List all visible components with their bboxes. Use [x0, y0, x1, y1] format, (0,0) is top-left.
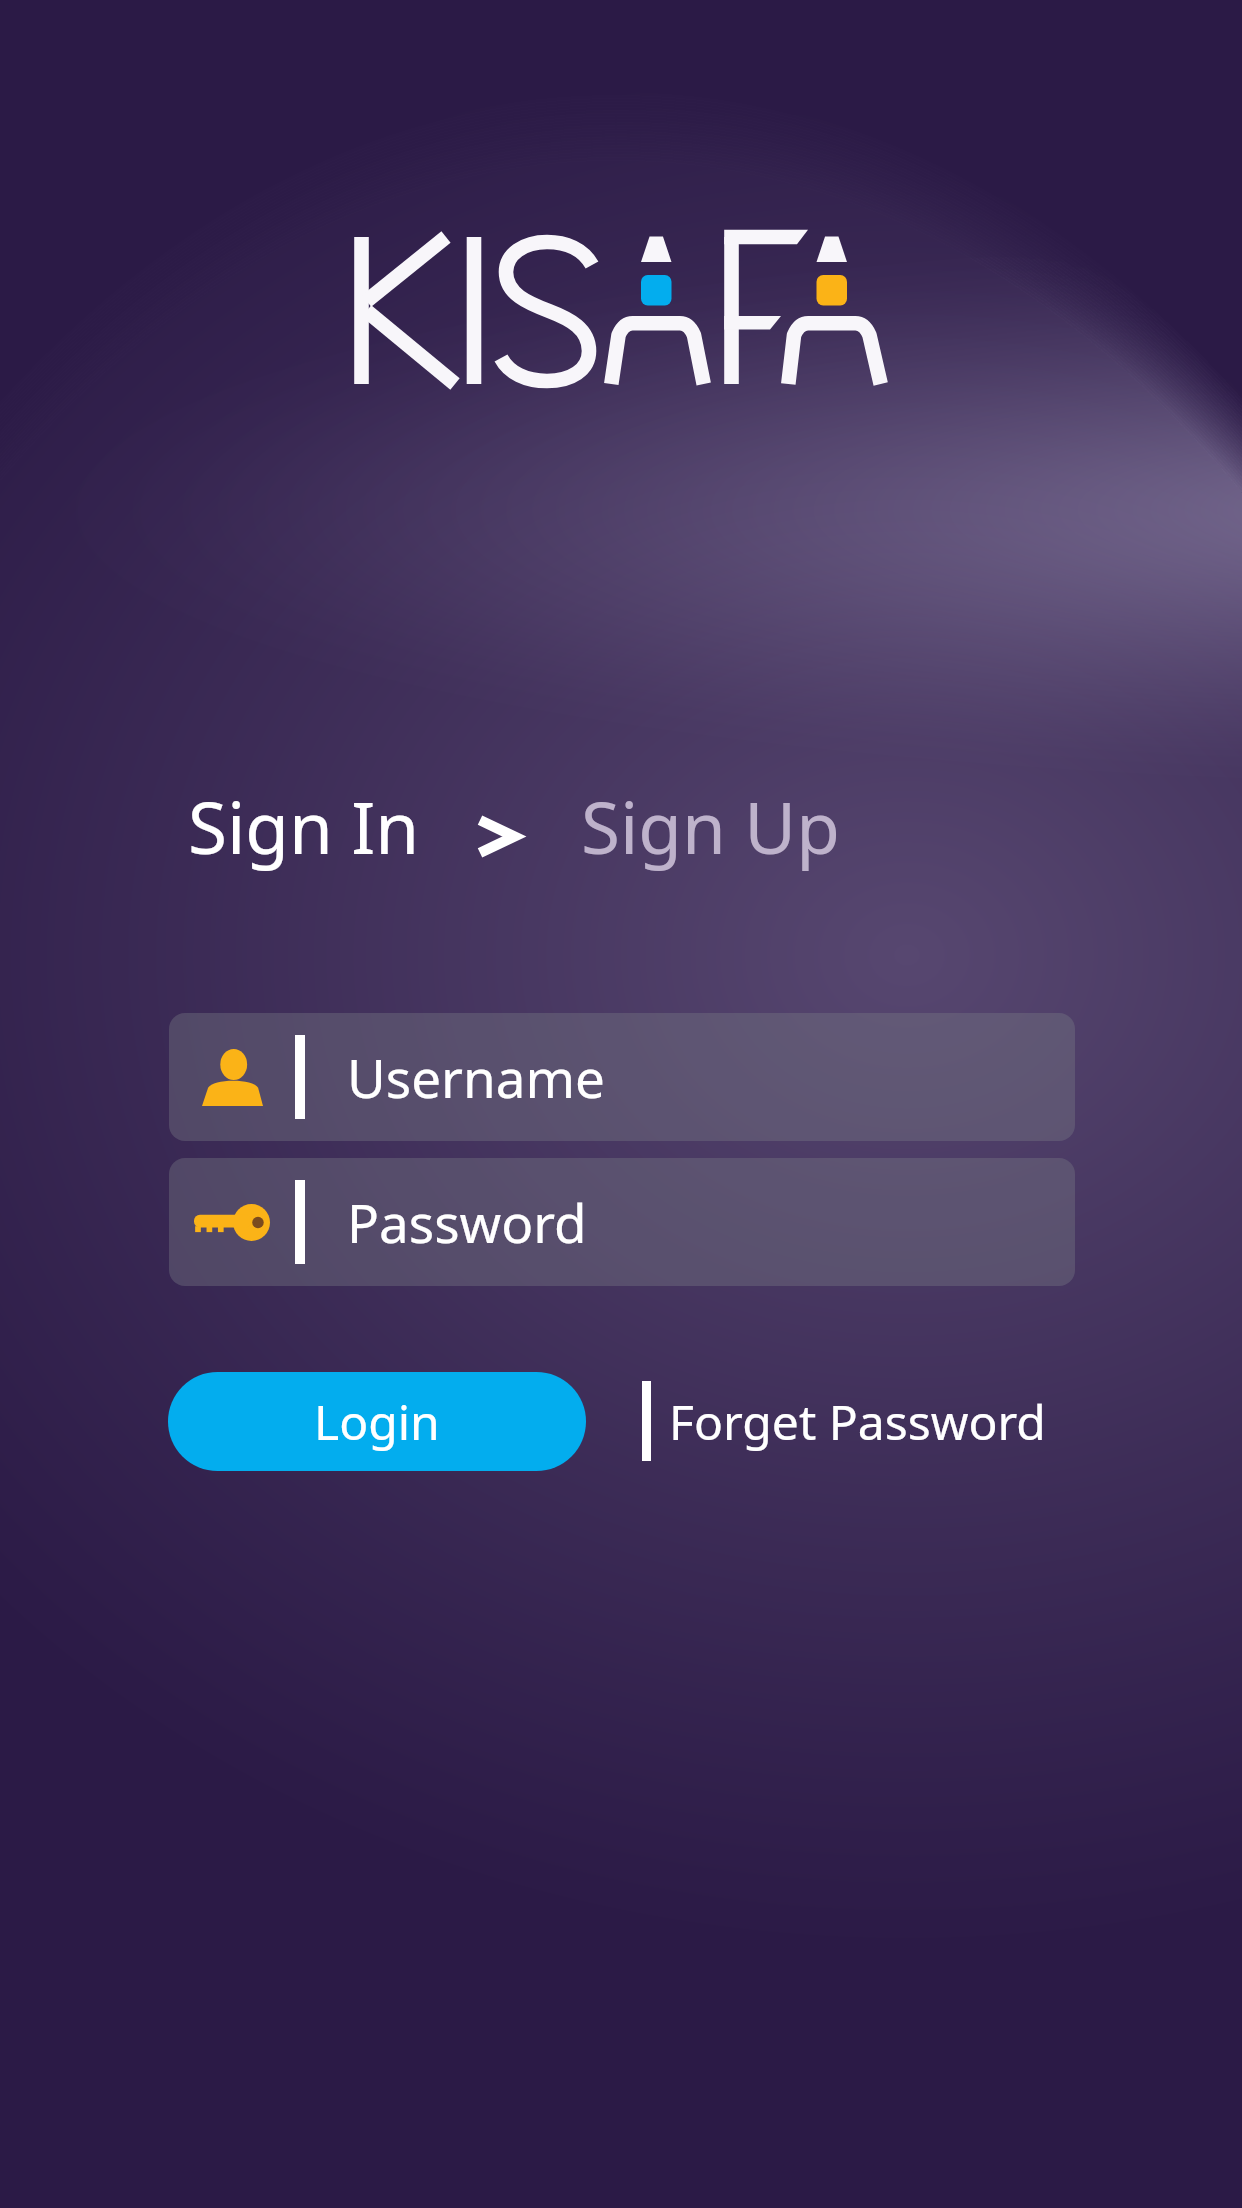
- staticText: Sign In: [188, 778, 420, 875]
- button[interactable]: Password: [169, 1158, 1075, 1286]
- button[interactable]: Username: [169, 1013, 1075, 1141]
- staticText: Forget Password: [669, 1389, 1046, 1454]
- staticText: Login: [314, 1389, 440, 1454]
- button[interactable]: Sign In: [188, 778, 420, 875]
- staticText: Password: [347, 1186, 587, 1258]
- other: Go to Sign Up: [480, 815, 518, 858]
- button[interactable]: Forget Password: [669, 1372, 1046, 1471]
- button[interactable]: Login: [168, 1372, 586, 1471]
- staticText: Sign Up: [581, 778, 840, 875]
- staticText: Username: [347, 1041, 605, 1113]
- button[interactable]: Sign Up: [581, 778, 840, 875]
